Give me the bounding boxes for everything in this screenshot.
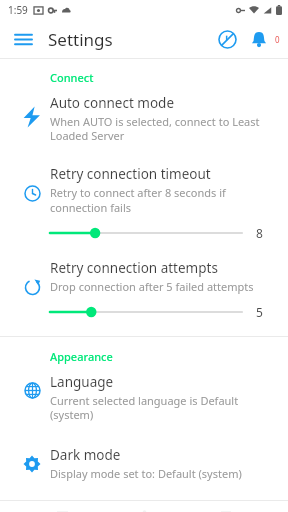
staticText: Dark mode	[50, 446, 121, 464]
button[interactable]: Retry connection timeout	[0, 160, 288, 247]
staticText: Auto connect mode	[50, 94, 175, 112]
staticText: 8	[256, 225, 263, 241]
staticText: 1:59	[8, 3, 28, 17]
staticText: Settings	[48, 28, 113, 51]
staticText: Current selected language is Default (sy…	[50, 393, 276, 422]
button[interactable]: Language	[0, 366, 288, 429]
staticText: Retry connection attempts	[50, 259, 218, 277]
staticText: Connect	[50, 70, 94, 85]
staticText: Retry connection timeout	[50, 165, 211, 183]
button[interactable]: Retry connection attempts	[0, 254, 288, 326]
staticText: 5	[256, 304, 263, 320]
button[interactable]: Notifications	[243, 23, 275, 55]
button[interactable]: Dark mode	[0, 439, 288, 488]
button[interactable]: Menu	[8, 24, 38, 54]
staticText: 0	[275, 34, 280, 45]
staticText: Language	[50, 373, 114, 391]
staticText: Display mode set to: Default (system)	[50, 466, 242, 481]
staticText: When AUTO is selected, connect to Least …	[50, 114, 276, 143]
staticText: Retry to connect after 8 seconds if conn…	[50, 185, 276, 215]
staticText: Appearance	[50, 349, 113, 364]
button[interactable]: Auto connect mode	[0, 87, 288, 150]
staticText: Drop connection after 5 failed attempts	[50, 279, 254, 294]
button[interactable]: Disconnect	[211, 23, 243, 55]
